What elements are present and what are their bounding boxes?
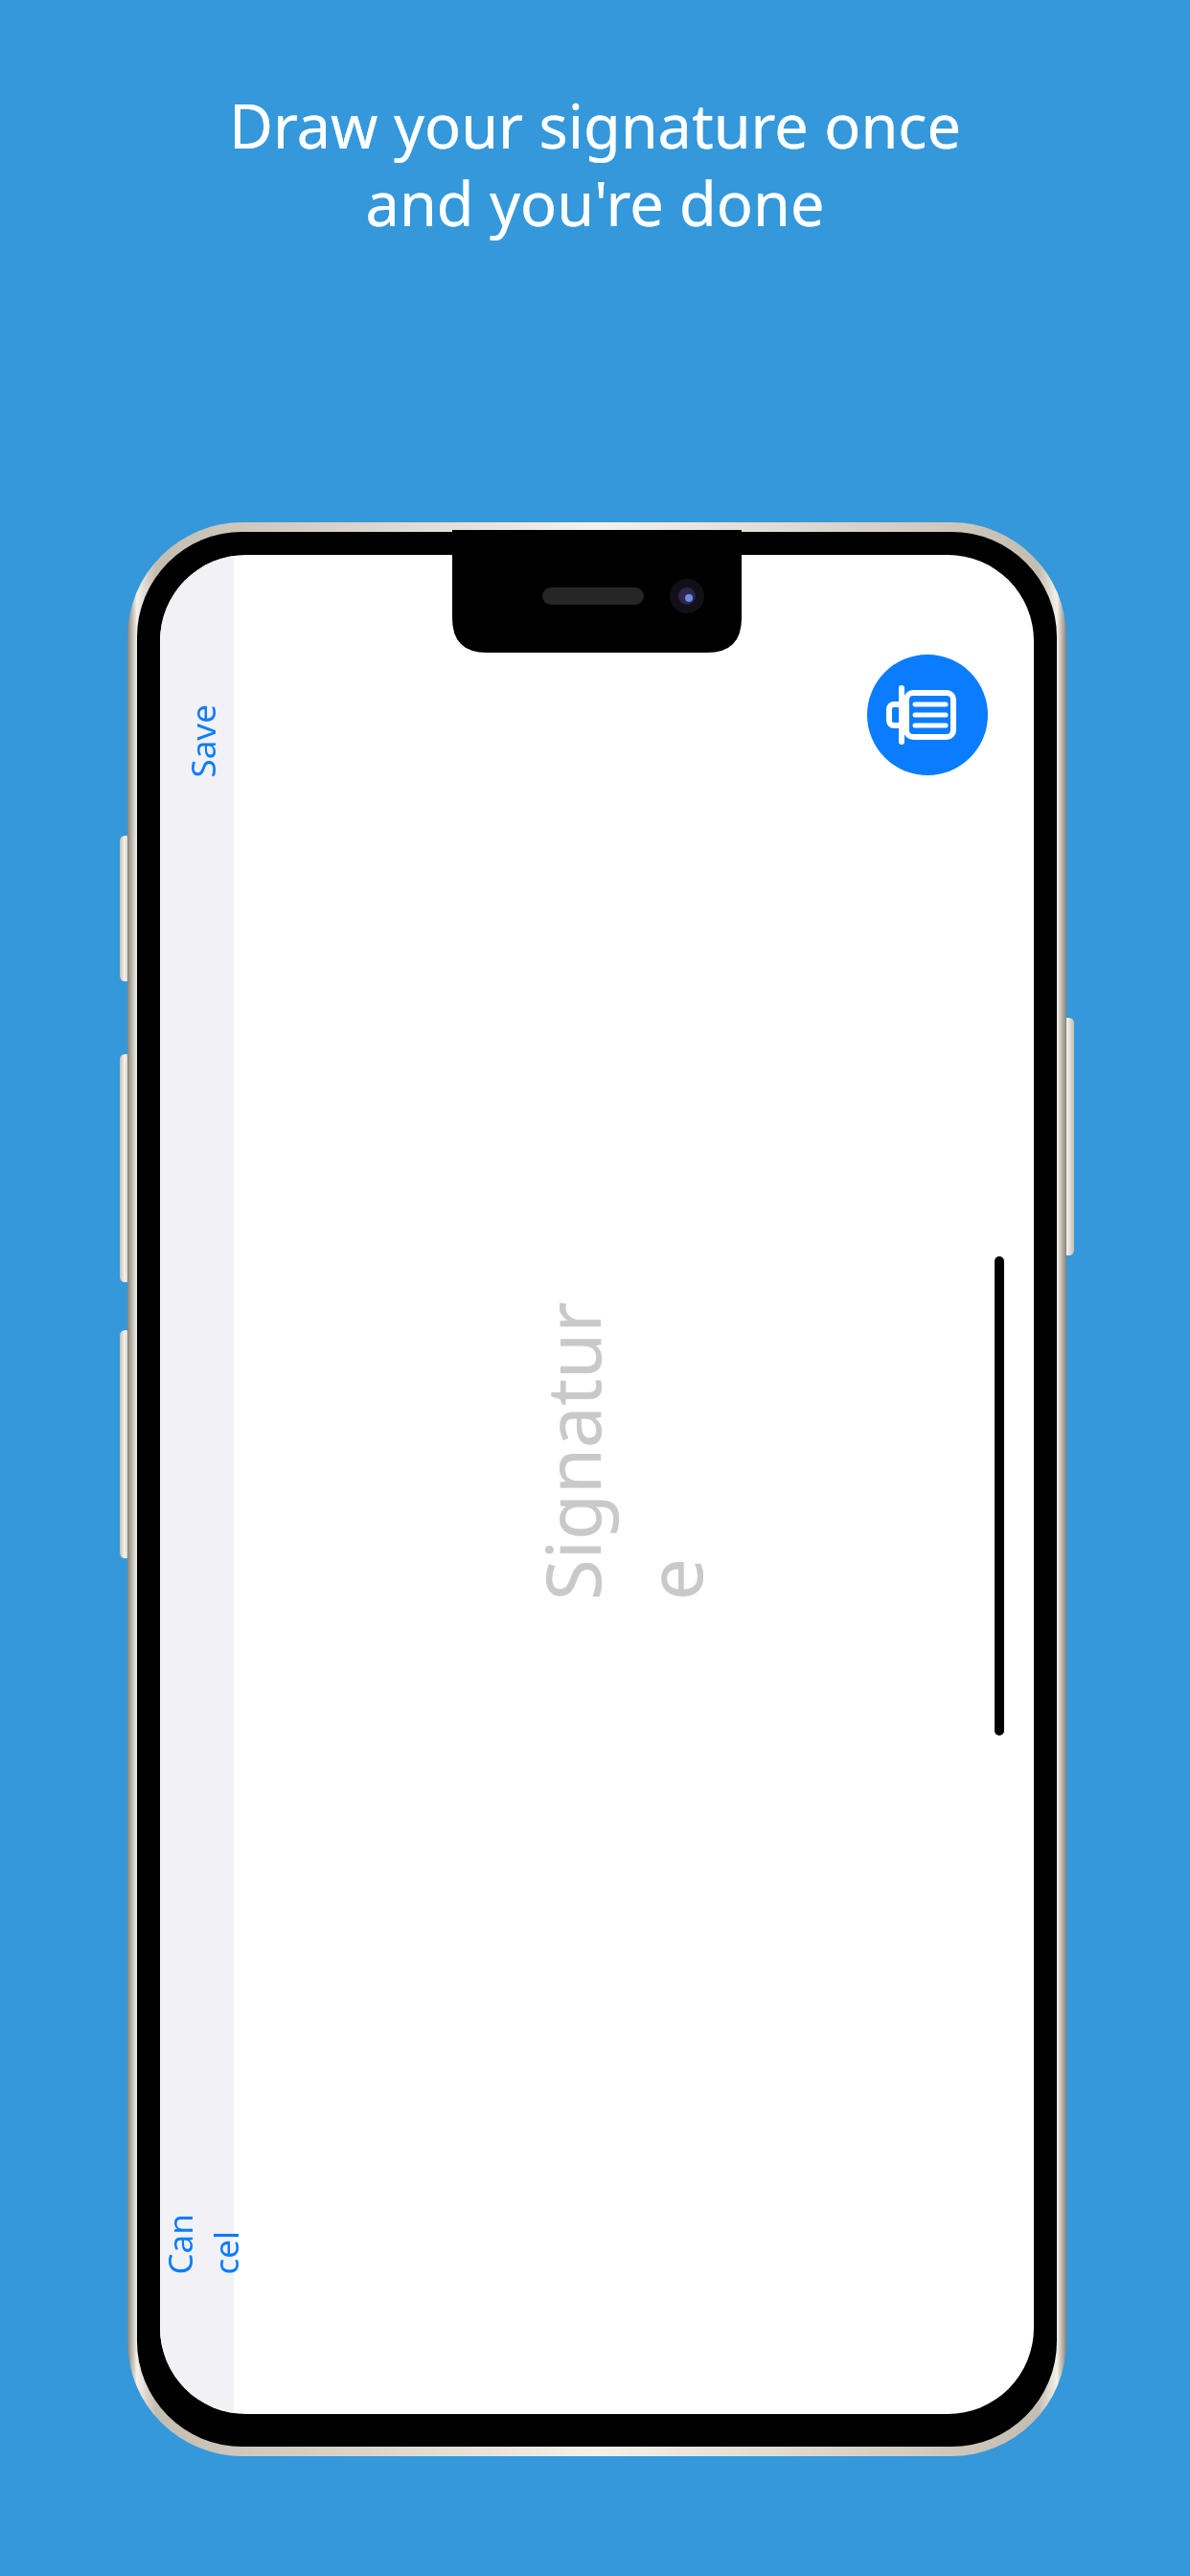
button[interactable]: Save — [166, 661, 240, 819]
staticText: Save — [180, 704, 226, 778]
button[interactable]: Rotate signature pad — [867, 655, 988, 775]
staticText: Draw your signature once and you're done — [0, 84, 1190, 2576]
staticText: Cancel — [157, 2201, 249, 2275]
staticText: Signature — [521, 1275, 724, 1600]
button[interactable]: Cancel — [166, 2139, 240, 2335]
